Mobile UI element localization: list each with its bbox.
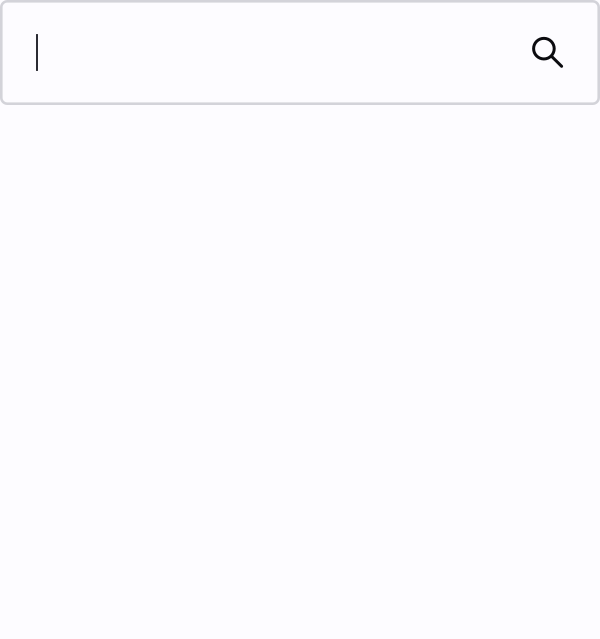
button[interactable]: Search: [0, 0, 600, 105]
